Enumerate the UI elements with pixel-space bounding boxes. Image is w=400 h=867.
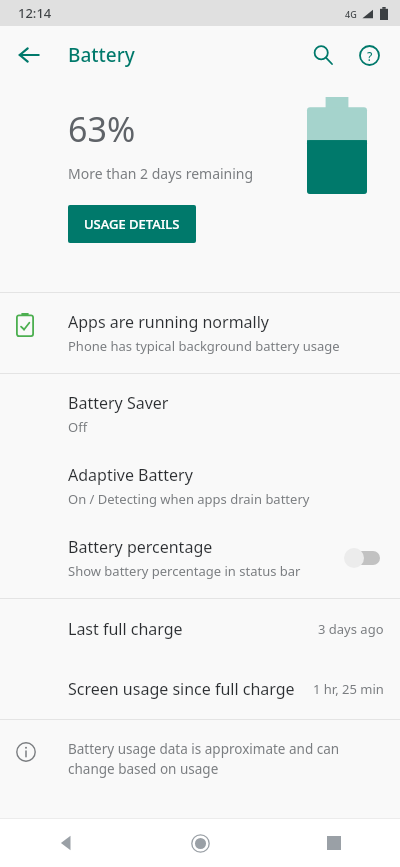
- button[interactable]: Battery percentage: [0, 520, 400, 598]
- staticText: Screen usage since full charge: [68, 678, 313, 700]
- button[interactable]: Apps are running normally: [0, 293, 400, 373]
- staticText: Battery usage data is approximate and ca…: [68, 740, 380, 778]
- button[interactable]: Search: [300, 32, 346, 78]
- staticText: USAGE DETAILS: [84, 215, 180, 233]
- button[interactable]: USAGE DETAILS: [68, 205, 196, 243]
- staticText: Phone has typical background battery usa…: [68, 337, 340, 355]
- button[interactable]: Battery Saver: [0, 374, 400, 450]
- staticText: 4G: [345, 8, 357, 20]
- staticText: Show battery percentage in status bar: [68, 562, 301, 580]
- staticText: On / Detecting when apps drain battery: [68, 490, 310, 508]
- staticText: Last full charge: [68, 618, 318, 640]
- staticText: ?: [367, 48, 373, 64]
- staticText: Adaptive Battery: [68, 464, 193, 486]
- staticText: 1 hr, 25 min: [313, 680, 384, 698]
- staticText: Battery percentage: [68, 536, 213, 558]
- staticText: Apps are running normally: [68, 311, 269, 333]
- staticText: Battery Saver: [68, 392, 169, 414]
- staticText: Battery: [68, 42, 135, 68]
- button[interactable]: Recents: [267, 819, 400, 867]
- button[interactable]: Adaptive Battery: [0, 450, 400, 520]
- staticText: 3 days ago: [318, 620, 384, 638]
- button[interactable]: Back: [6, 32, 52, 78]
- staticText: 63%: [68, 106, 136, 152]
- button[interactable]: Help: [346, 32, 392, 78]
- staticText: 12:14: [18, 4, 52, 22]
- button[interactable]: Screen usage since full charge: [0, 659, 400, 719]
- button[interactable]: Last full charge: [0, 599, 400, 659]
- staticText: Off: [68, 418, 88, 436]
- staticText: More than 2 days remaining: [68, 164, 254, 183]
- button[interactable]: Home: [134, 819, 267, 867]
- button[interactable]: Back: [0, 819, 134, 867]
